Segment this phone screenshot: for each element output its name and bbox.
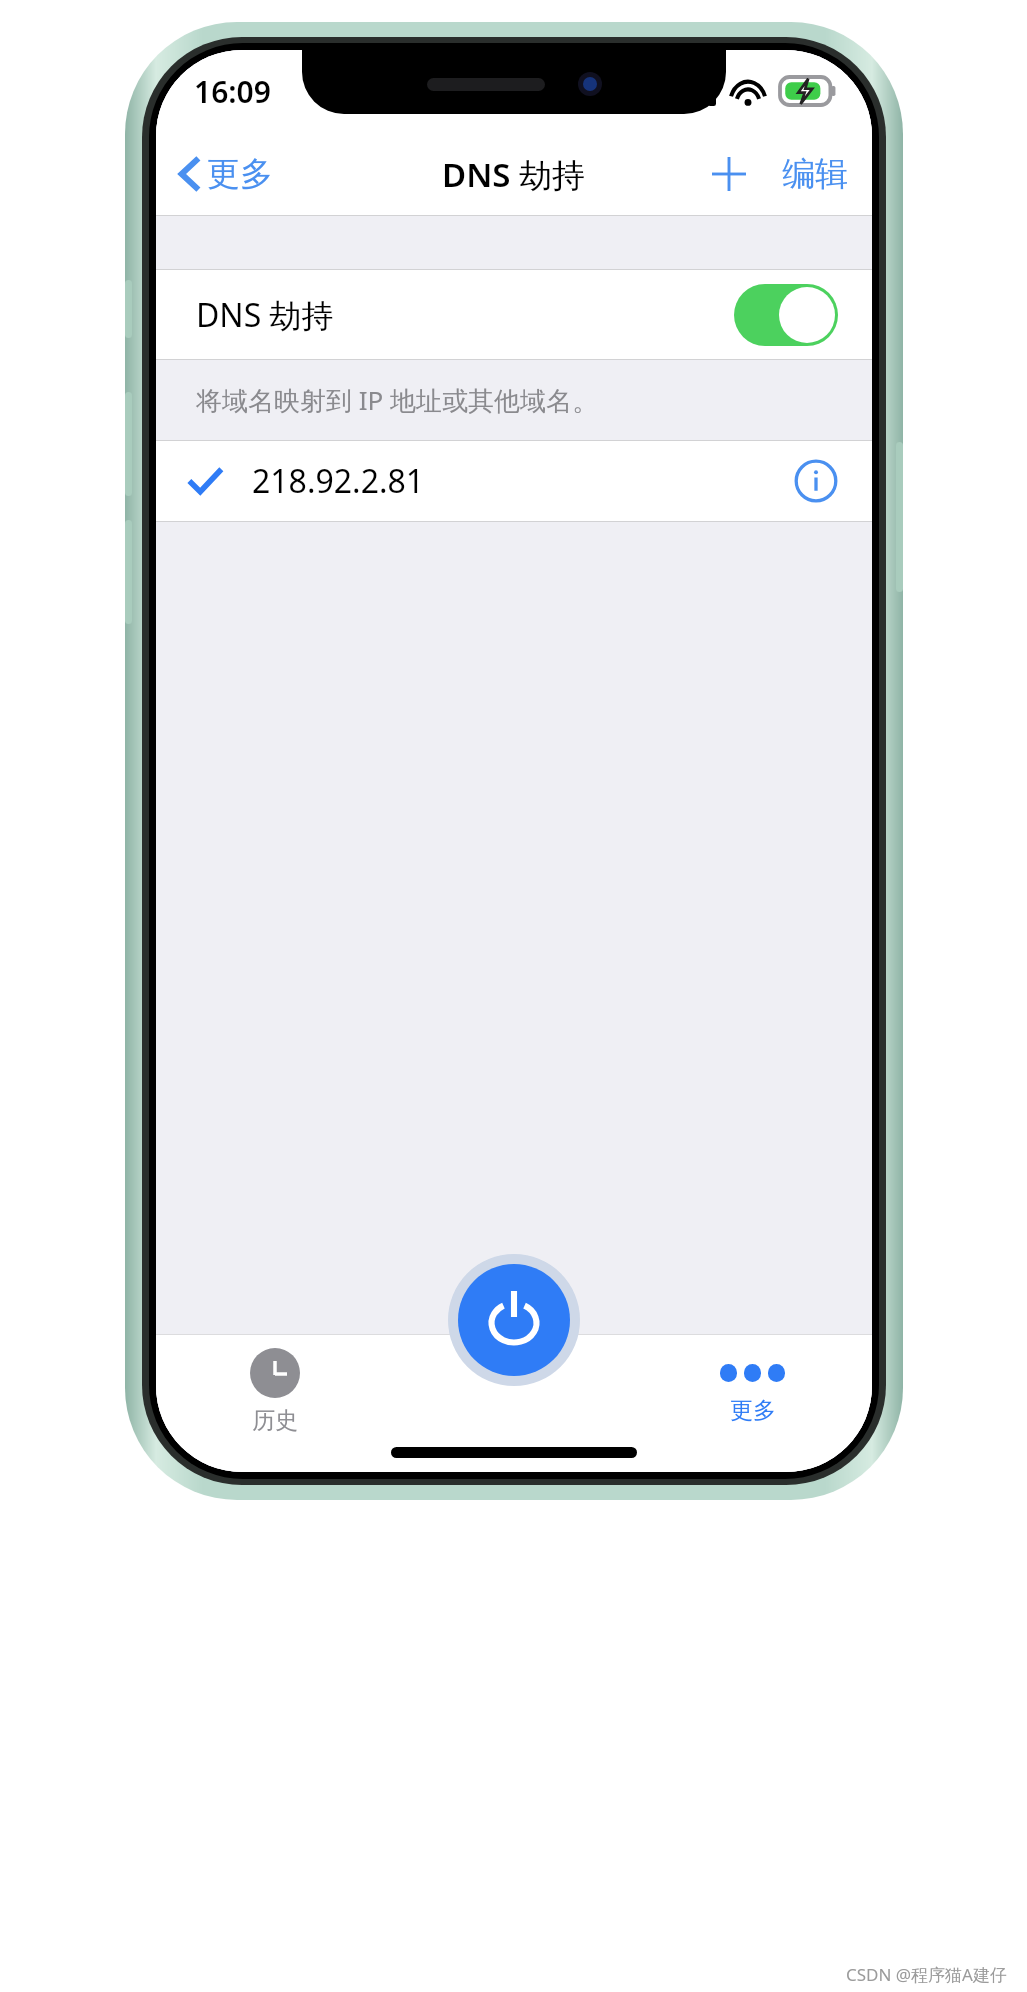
button[interactable]: 编辑: [776, 145, 872, 203]
button[interactable]: Add: [698, 147, 760, 201]
staticText: 历史: [252, 1406, 298, 1435]
button[interactable]: Info: [794, 459, 838, 503]
staticText: 218.92.2.81: [252, 459, 425, 503]
button[interactable]: 218.92.2.81: [156, 440, 872, 522]
button[interactable]: 历史: [156, 1334, 394, 1472]
button[interactable]: DNS hijack toggle: [734, 284, 838, 346]
button[interactable]: Power: [394, 1334, 633, 1472]
button[interactable]: 更多: [156, 147, 287, 201]
button[interactable]: 更多: [633, 1334, 872, 1472]
staticText: CSDN @程序猫A建仔: [846, 1963, 1007, 1986]
staticText: DNS 劫持: [196, 293, 334, 337]
staticText: 编辑: [782, 153, 848, 195]
staticText: 更多: [207, 153, 273, 195]
staticText: 将域名映射到 IP 地址或其他域名。: [196, 382, 599, 418]
button[interactable]: Power: [448, 1254, 580, 1386]
staticText: 更多: [730, 1396, 776, 1425]
staticText: DNS 劫持: [442, 152, 586, 197]
button[interactable]: DNS 劫持: [156, 269, 872, 360]
staticText: 16:09: [194, 71, 271, 112]
